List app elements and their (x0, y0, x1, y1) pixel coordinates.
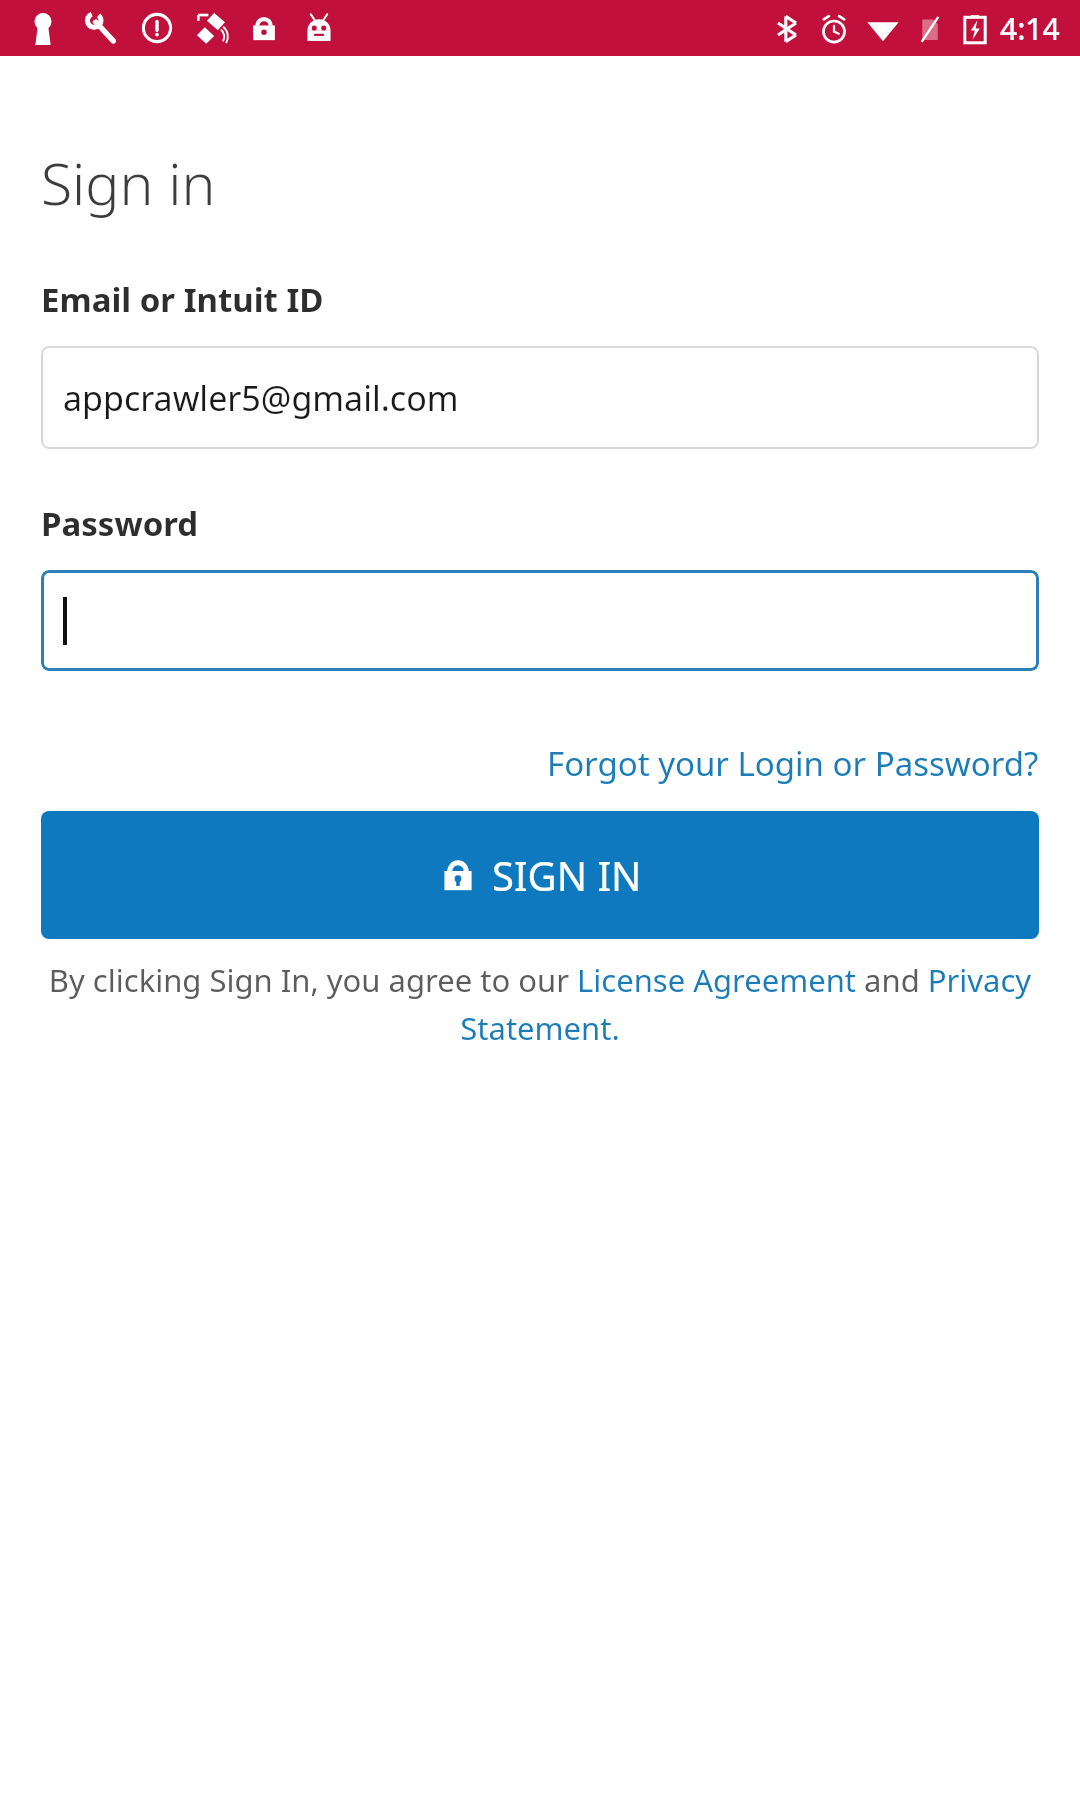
staticText: By clicking Sign In, you agree to our Li… (41, 959, 1039, 1049)
other: Developer tools (84, 11, 118, 45)
other: Key (26, 11, 60, 45)
other: Alarm set (818, 13, 850, 45)
staticText: SIGN IN (492, 848, 642, 902)
button[interactable]: Forgot your Login or Password? (547, 741, 1039, 786)
other: Battery charging (960, 14, 990, 44)
other: Mock location (194, 10, 230, 46)
other: Secure (248, 12, 280, 44)
other: System (302, 11, 336, 45)
staticText: Sign in (41, 144, 216, 222)
other: Wi-Fi (866, 12, 900, 46)
staticText: Email or Intuit ID (41, 277, 324, 322)
other: No SIM card (914, 13, 946, 45)
other: Info (140, 11, 174, 45)
other: Bluetooth (772, 14, 802, 44)
staticText: 4:14 (1000, 8, 1060, 49)
button[interactable]: By clicking Sign In, you agree to our Li… (41, 959, 1039, 1049)
staticText: Forgot your Login or Password? (547, 741, 1039, 786)
button[interactable] (41, 570, 1039, 671)
button[interactable]: SIGN IN (41, 811, 1039, 939)
button[interactable]: appcrawler5@gmail.com (41, 346, 1039, 449)
staticText: appcrawler5@gmail.com (63, 375, 459, 421)
staticText: Password (41, 501, 199, 546)
